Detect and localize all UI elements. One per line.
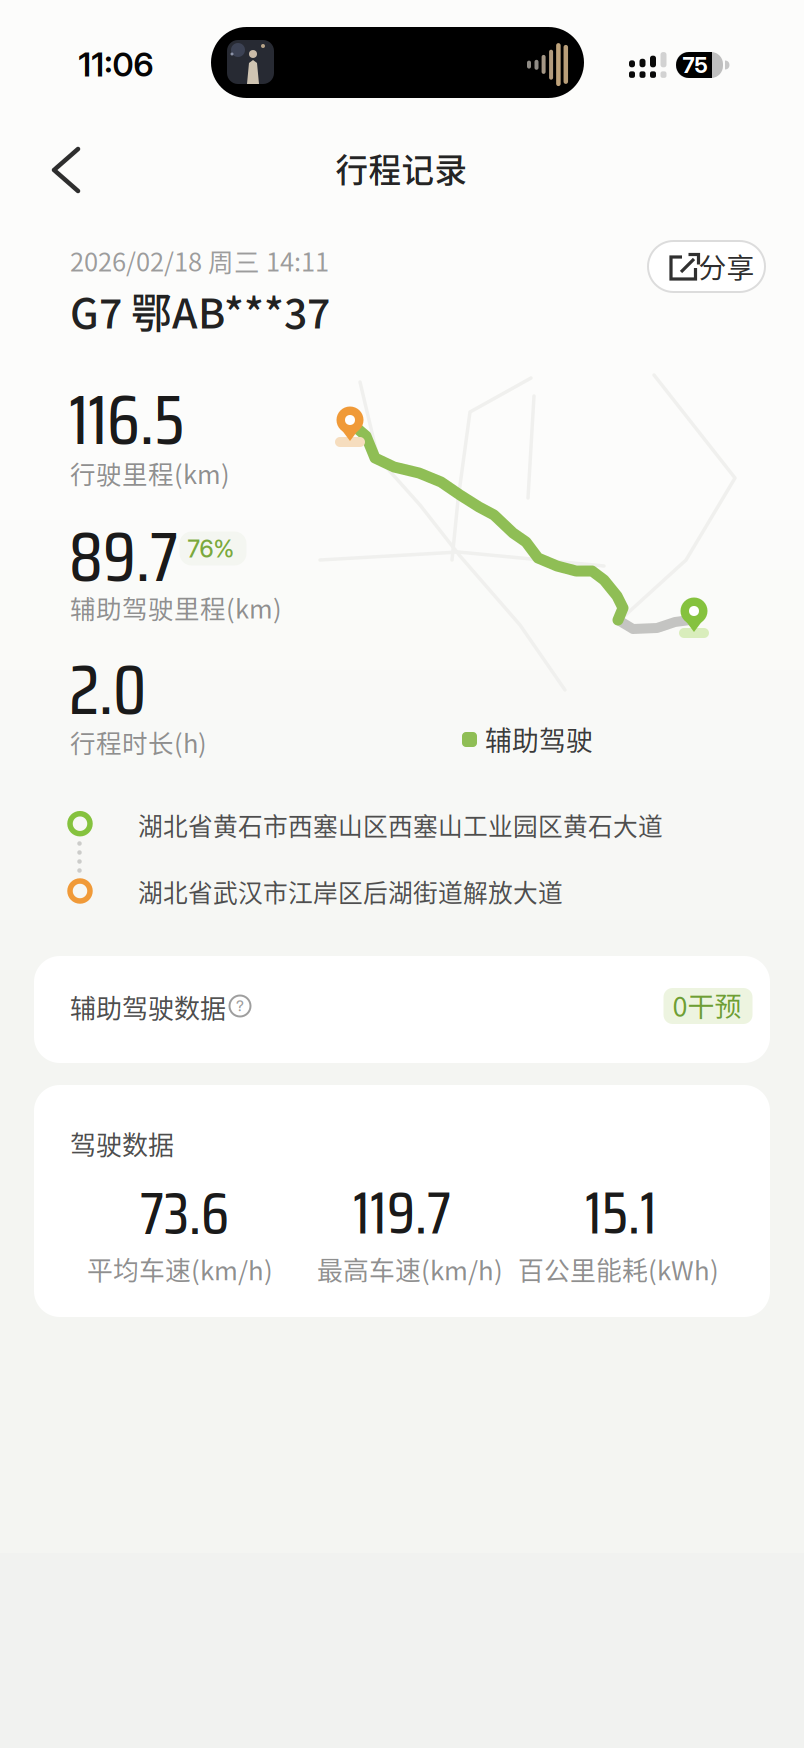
staticText: 行程记录 [335, 144, 467, 192]
staticText: 辅助驾驶 [485, 720, 593, 758]
staticText: 分享 [698, 246, 754, 286]
button[interactable]: 辅助驾驶数据说明 [226, 992, 254, 1020]
staticText: 辅助驾驶里程(km) [70, 589, 282, 626]
staticText: 驾驶数据 [70, 1125, 174, 1162]
staticText: 最高车速(km/h) [317, 1250, 503, 1288]
staticText: 百公里能耗(kWh) [518, 1250, 719, 1288]
staticText: 湖北省武汉市江岸区后湖街道解放大道 [138, 874, 563, 909]
button[interactable]: 返回 [44, 140, 88, 200]
staticText: 89.7 [69, 503, 178, 611]
staticText: 行驶里程(km) [70, 454, 230, 491]
staticText: G7 鄂AB***37 [70, 281, 330, 340]
staticText: 0干预 [672, 985, 741, 1025]
staticText: 辅助驾驶数据 [70, 988, 226, 1026]
staticText: 2.0 [69, 636, 146, 744]
button[interactable]: 分享 [648, 241, 765, 292]
staticText: 11:06 [78, 44, 153, 84]
staticText: 行程时长(h) [70, 723, 207, 760]
staticText: 76% [187, 535, 234, 563]
staticText: 119.7 [353, 1167, 451, 1259]
staticText: 2026/02/18 周三 14:11 [70, 242, 329, 279]
staticText: 73.6 [140, 1167, 229, 1260]
staticText: ? [236, 997, 244, 1015]
staticText: 平均车速(km/h) [87, 1250, 273, 1288]
staticText: 湖北省黄石市西塞山区西塞山工业园区黄石大道 [138, 807, 663, 843]
staticText: 116.5 [69, 366, 184, 474]
staticText: 15.1 [585, 1167, 657, 1259]
staticText: 75 [682, 52, 707, 78]
